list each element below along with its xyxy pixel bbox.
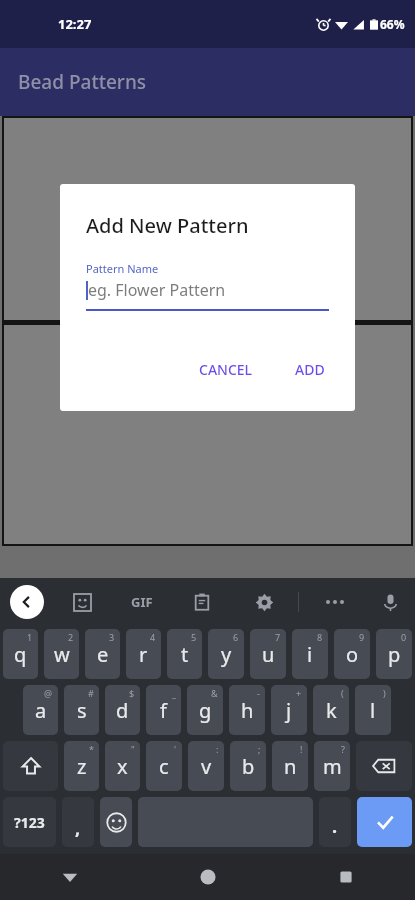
staticText: 7 <box>275 631 281 643</box>
button[interactable]: ADD <box>287 354 333 385</box>
button[interactable]: d <box>105 685 140 735</box>
button[interactable]: Voice input <box>373 585 407 619</box>
staticText: s <box>77 697 87 724</box>
button[interactable]: x <box>105 741 140 791</box>
button[interactable]: Enter <box>357 797 412 847</box>
button[interactable]: v <box>188 741 224 791</box>
button[interactable]: CANCEL <box>191 354 261 385</box>
staticText: + <box>296 687 302 699</box>
button[interactable]: g <box>187 685 223 735</box>
staticText: $ <box>129 687 135 699</box>
button[interactable]: w <box>44 629 79 679</box>
button[interactable]: Back <box>10 585 44 619</box>
button[interactable]: j <box>271 685 307 735</box>
staticText: f <box>160 697 167 724</box>
staticText: w <box>54 641 70 668</box>
staticText: Bead Patterns <box>18 69 147 95</box>
staticText: e <box>97 641 109 668</box>
staticText: b <box>242 753 255 780</box>
button[interactable]: Recents <box>277 854 415 900</box>
button[interactable]: More options <box>319 586 351 618</box>
staticText: ; <box>258 743 261 755</box>
button[interactable]: Stickers <box>66 586 98 618</box>
button[interactable]: y <box>208 629 244 679</box>
staticText: " <box>131 743 135 755</box>
staticText: l <box>370 697 376 724</box>
button[interactable]: q <box>3 629 38 679</box>
staticText: p <box>388 641 401 668</box>
staticText: t <box>181 641 189 668</box>
staticText: 0 <box>401 631 407 643</box>
button[interactable]: n <box>272 741 308 791</box>
staticText: : <box>216 743 219 755</box>
staticText: & <box>211 687 218 699</box>
staticText: n <box>284 753 297 780</box>
staticText: i <box>307 641 313 668</box>
button[interactable]: b <box>230 741 266 791</box>
staticText: q <box>14 641 27 668</box>
button[interactable]: Back <box>0 854 139 900</box>
staticText: - <box>257 687 260 699</box>
button[interactable]: p <box>376 629 412 679</box>
button[interactable]: ?123 <box>3 797 56 847</box>
button[interactable]: k <box>313 685 349 735</box>
staticText: eg. Flower Pattern <box>88 279 226 301</box>
staticText: @ <box>44 687 53 699</box>
staticText: k <box>326 697 337 724</box>
staticText: * <box>89 743 94 755</box>
staticText: m <box>323 753 342 780</box>
staticText: v <box>201 753 212 780</box>
staticText: ! <box>300 743 303 755</box>
staticText: Pattern Name <box>86 261 159 276</box>
staticText: g <box>199 697 212 724</box>
button[interactable]: Load <box>193 341 223 383</box>
staticText: a <box>35 697 47 724</box>
staticText: _ <box>172 687 176 699</box>
staticText: Load <box>193 365 223 383</box>
button[interactable]: e <box>85 629 120 679</box>
staticText: # <box>88 687 94 699</box>
button[interactable]: f <box>146 685 181 735</box>
button[interactable]: u <box>250 629 286 679</box>
button[interactable]: l <box>355 685 391 735</box>
staticText: u <box>262 641 275 668</box>
button[interactable]: Clipboard <box>186 586 218 618</box>
staticText: o <box>346 641 359 668</box>
button[interactable]: h <box>229 685 265 735</box>
button[interactable]: , <box>62 797 94 847</box>
staticText: 2 <box>68 631 74 643</box>
button[interactable]: i <box>292 629 328 679</box>
button[interactable]: . <box>319 797 351 847</box>
button[interactable]: z <box>64 741 99 791</box>
staticText: . <box>332 814 338 839</box>
button[interactable]: m <box>314 741 350 791</box>
staticText: ( <box>341 687 344 699</box>
staticText: GIF <box>131 593 153 611</box>
button[interactable]: c <box>146 741 182 791</box>
staticText: z <box>77 753 87 780</box>
staticText: j <box>286 697 292 724</box>
button[interactable]: a <box>23 685 58 735</box>
button[interactable]: t <box>167 629 202 679</box>
button[interactable]: Emoji <box>100 797 132 847</box>
button[interactable]: Settings <box>248 586 280 618</box>
button[interactable]: r <box>126 629 161 679</box>
button[interactable]: s <box>64 685 99 735</box>
button[interactable]: Shift <box>3 741 58 791</box>
staticText: r <box>139 641 148 668</box>
staticText: Add New Pattern <box>86 212 249 239</box>
staticText: 8 <box>317 631 323 643</box>
button[interactable]: o <box>334 629 370 679</box>
staticText: ? <box>341 743 345 755</box>
staticText: ) <box>383 687 386 699</box>
staticText: 3 <box>109 631 115 643</box>
staticText: ' <box>174 743 177 755</box>
button[interactable]: GIF <box>124 584 160 620</box>
staticText: d <box>116 697 129 724</box>
staticText: 66% <box>380 16 405 32</box>
staticText: ADD <box>295 360 325 379</box>
button[interactable]: Backspace <box>356 741 412 791</box>
button[interactable]: Home <box>139 854 277 900</box>
staticText: , <box>75 816 81 841</box>
